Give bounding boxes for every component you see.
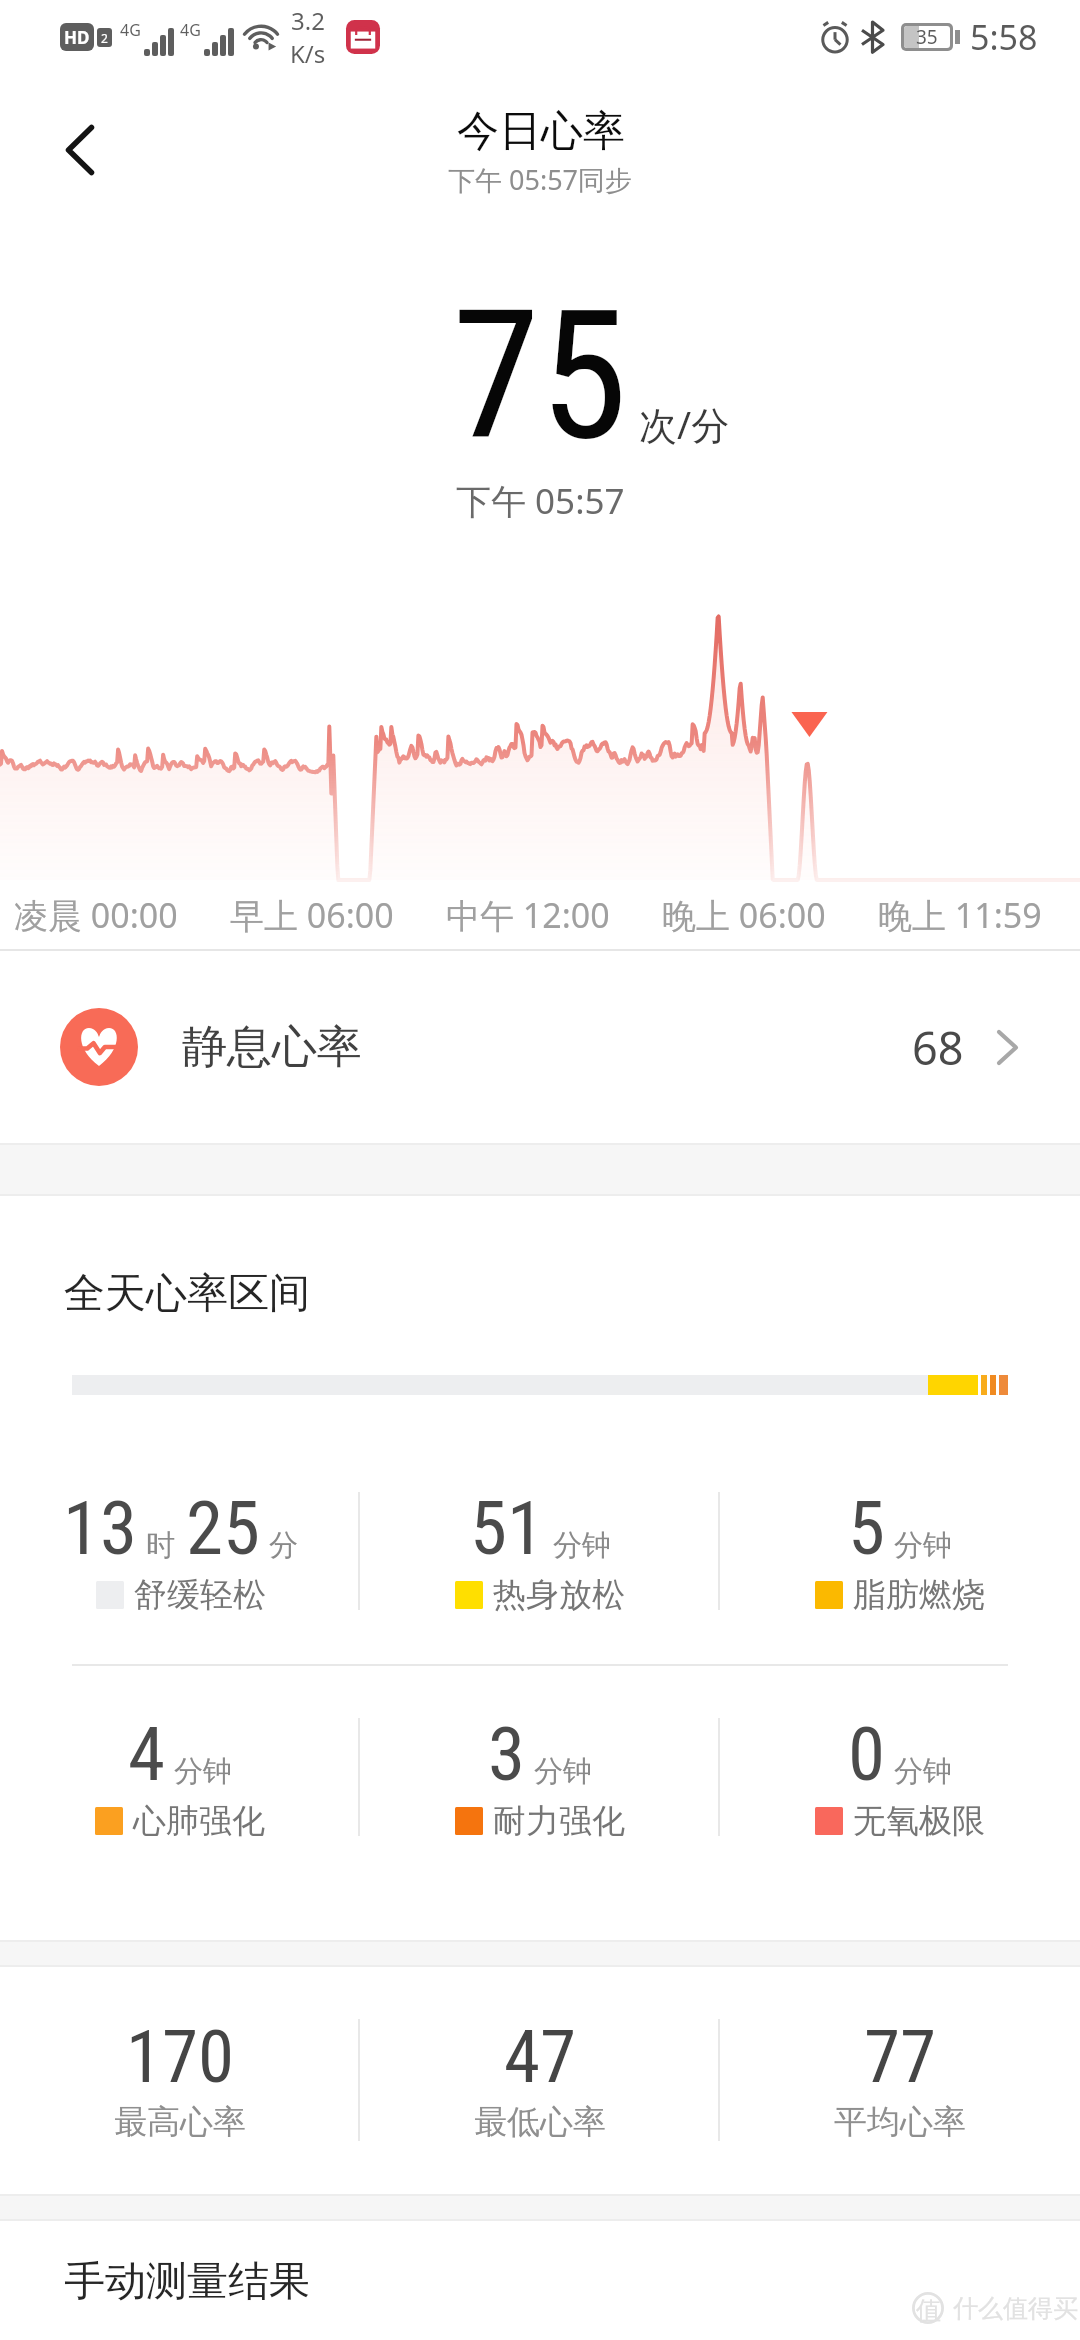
staticText: 分: [269, 1527, 298, 1564]
staticText: 无氧极限: [853, 1800, 985, 1842]
staticText: 77: [864, 2014, 937, 2100]
staticText: 25: [186, 1484, 261, 1572]
staticText: 值: [916, 2295, 941, 2326]
staticText: 分钟: [553, 1527, 611, 1564]
staticText: 耐力强化: [493, 1800, 625, 1842]
staticText: 分钟: [534, 1753, 592, 1790]
button[interactable]: 静息心率: [0, 951, 1080, 1143]
staticText: K/s: [290, 37, 326, 70]
staticText: 什么值得买: [953, 2293, 1078, 2324]
staticText: 时: [146, 1527, 175, 1564]
staticText: 4: [128, 1710, 166, 1798]
staticText: 最低心率: [474, 2101, 606, 2143]
staticText: 4G: [120, 19, 141, 41]
staticText: 47: [504, 2014, 577, 2100]
staticText: 0: [848, 1710, 886, 1798]
staticText: 中午 12:00: [446, 892, 610, 938]
staticText: 热身放松: [493, 1574, 625, 1616]
staticText: 分钟: [894, 1753, 952, 1790]
staticText: 凌晨 00:00: [14, 892, 178, 938]
staticText: 分钟: [174, 1753, 232, 1790]
staticText: 脂肪燃烧: [853, 1574, 985, 1616]
staticText: 最高心率: [114, 2101, 246, 2143]
staticText: 早上 06:00: [230, 892, 394, 938]
staticText: 全天心率区间: [64, 1268, 310, 1320]
staticText: 3.2: [291, 4, 325, 37]
staticText: 2: [101, 30, 108, 46]
staticText: 下午 05:57: [456, 477, 625, 525]
button[interactable]: Back: [0, 80, 160, 220]
staticText: 手动测量结果: [64, 2256, 310, 2308]
staticText: 13: [63, 1484, 138, 1572]
staticText: 170: [126, 2014, 235, 2100]
staticText: 晚上 11:59: [878, 892, 1042, 938]
staticText: 次/分: [639, 398, 730, 450]
staticText: 晚上 06:00: [662, 892, 826, 938]
staticText: 5: [848, 1484, 886, 1572]
staticText: 51: [470, 1484, 545, 1572]
staticText: 4G: [180, 19, 201, 41]
staticText: 35: [916, 24, 938, 50]
staticText: HD: [64, 26, 90, 49]
staticText: 3: [488, 1710, 526, 1798]
staticText: 分钟: [894, 1527, 952, 1564]
staticText: 下午 05:57同步: [448, 161, 633, 198]
staticText: 平均心率: [834, 2101, 966, 2143]
staticText: 5:58: [970, 14, 1038, 60]
staticText: 68: [912, 1017, 964, 1078]
staticText: 75: [452, 272, 628, 481]
staticText: 舒缓轻松: [134, 1574, 266, 1616]
staticText: 今日心率: [457, 105, 625, 158]
staticText: 静息心率: [182, 1019, 362, 1076]
staticText: 心肺强化: [133, 1800, 265, 1842]
